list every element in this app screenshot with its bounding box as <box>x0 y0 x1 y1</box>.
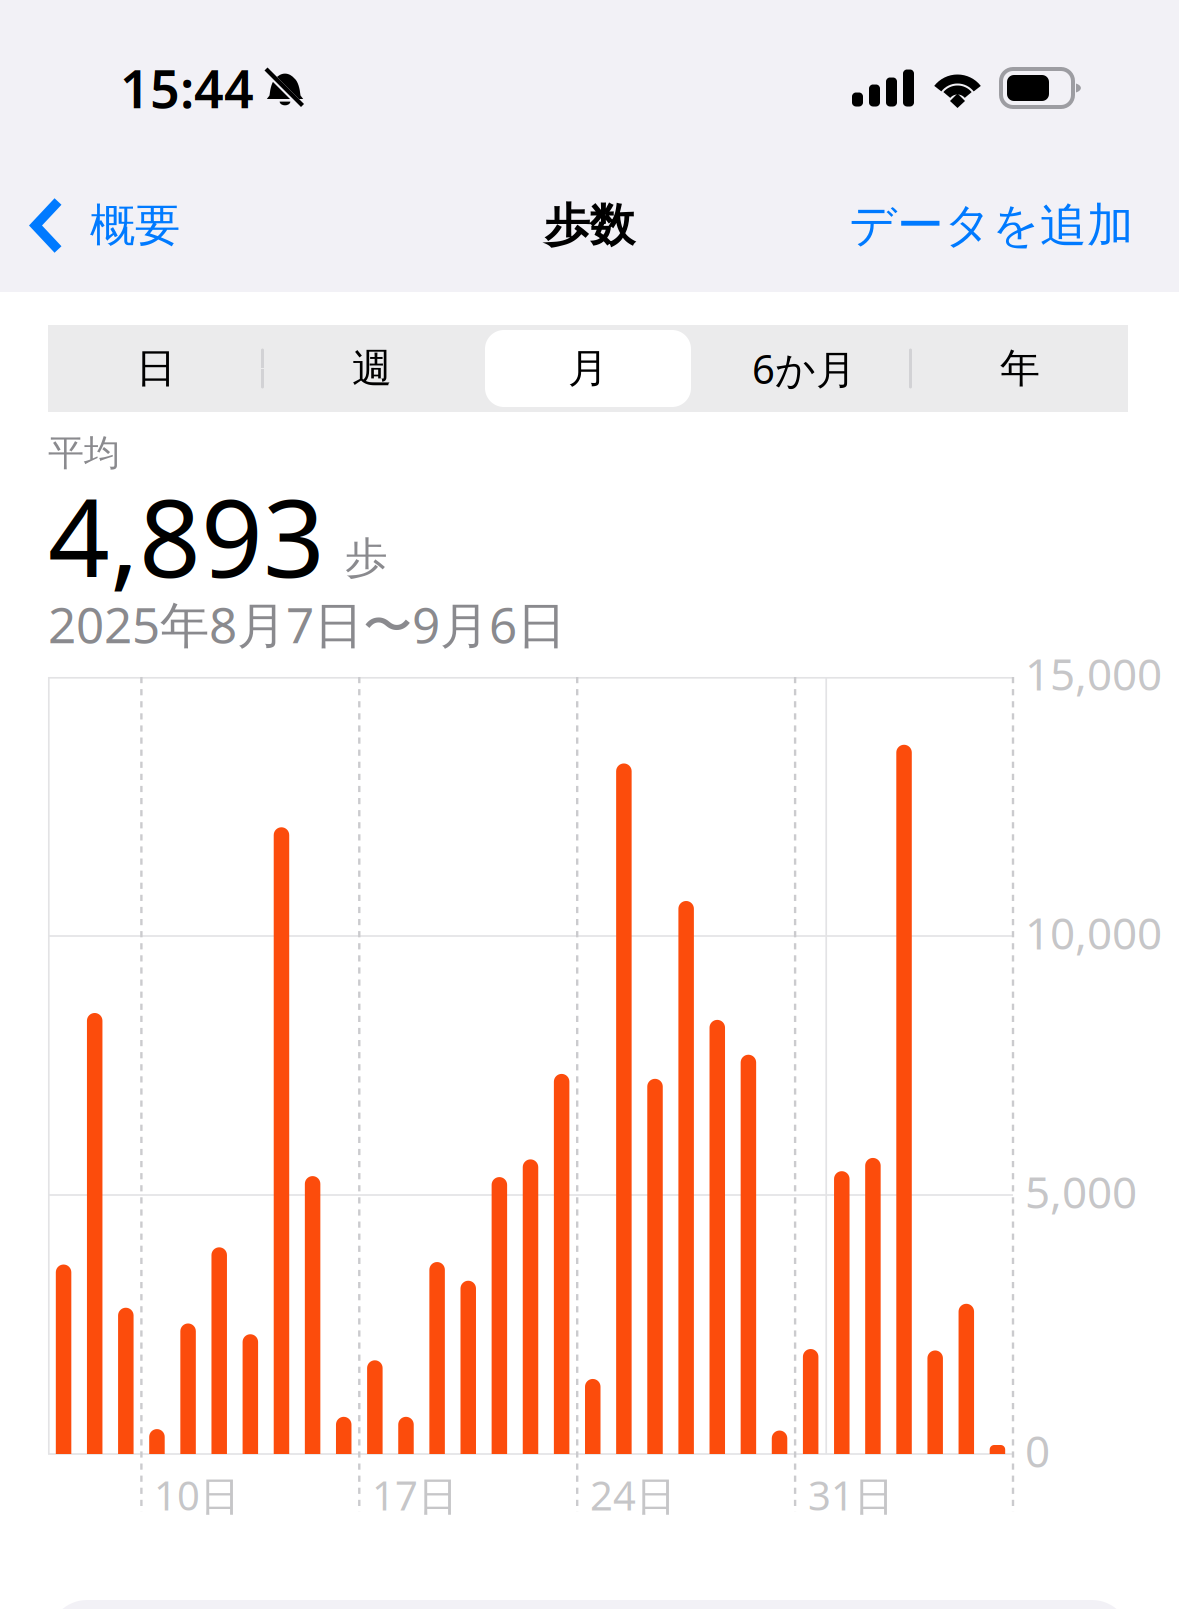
staticText: 日 <box>136 344 176 393</box>
staticText: 概要 <box>90 198 180 253</box>
button[interactable]: 週 <box>264 325 480 412</box>
staticText: 5,000 <box>1025 1162 1137 1221</box>
button[interactable]: データを追加 <box>831 150 1179 292</box>
staticText: 10日 <box>154 1468 240 1521</box>
button[interactable]: 日 <box>48 325 264 412</box>
staticText: 24日 <box>590 1468 676 1521</box>
staticText: 平均 <box>48 431 120 475</box>
staticText: 15,000 <box>1025 644 1162 703</box>
staticText: 0 <box>1025 1421 1050 1480</box>
staticText: 17日 <box>372 1468 458 1521</box>
button[interactable]: 年 <box>912 325 1128 412</box>
staticText: 年 <box>1000 344 1040 393</box>
staticText: 2025年8月7日〜9月6日 <box>48 591 566 657</box>
button[interactable]: 概要 <box>0 150 198 292</box>
staticText: 月 <box>568 344 608 393</box>
staticText: 4,893 <box>48 464 325 607</box>
staticText: 6か月 <box>752 342 856 395</box>
staticText: 歩 <box>345 532 388 584</box>
staticText: 週 <box>352 344 392 393</box>
button[interactable]: 6か月 <box>696 325 912 412</box>
button[interactable]: 月 <box>480 325 696 412</box>
staticText: 歩数 <box>544 198 634 253</box>
staticText: 15:44 <box>120 53 254 123</box>
staticText: 10,000 <box>1025 903 1162 962</box>
staticText: データを追加 <box>849 197 1134 254</box>
staticText: 31日 <box>808 1468 894 1521</box>
